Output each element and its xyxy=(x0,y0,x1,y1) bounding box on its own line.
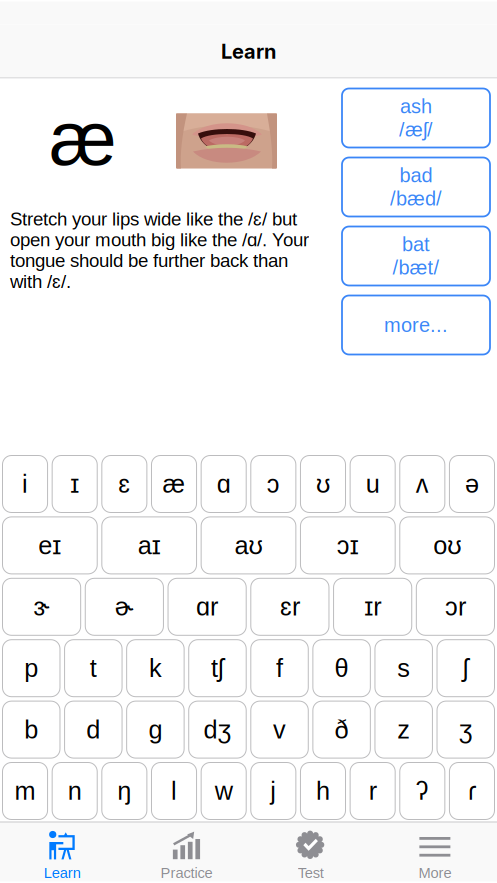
button[interactable]: ɑ xyxy=(201,455,246,512)
button[interactable]: Learn xyxy=(0,820,124,882)
staticText: z xyxy=(397,715,410,744)
button[interactable]: ŋ xyxy=(102,762,147,819)
staticText: ʊ xyxy=(316,470,330,498)
staticText: /æʃ/ xyxy=(399,118,433,141)
staticText: r xyxy=(369,777,377,805)
button[interactable]: ɛ xyxy=(102,455,147,512)
staticText: æ xyxy=(162,470,185,498)
staticText: ŋ xyxy=(117,777,131,805)
button[interactable]: tʃ xyxy=(189,640,246,697)
button[interactable]: ɔ xyxy=(251,455,296,512)
button[interactable]: ɾ xyxy=(449,762,494,819)
staticText: ɑr xyxy=(196,593,218,621)
staticText: l xyxy=(171,777,177,805)
staticText: j xyxy=(270,777,276,805)
button[interactable]: ɔɪ xyxy=(300,517,395,574)
staticText: bat xyxy=(402,233,430,255)
button[interactable]: v xyxy=(251,701,308,758)
button[interactable]: aɪ xyxy=(102,517,196,574)
staticText: dʒ xyxy=(203,715,231,744)
staticText: ʔ xyxy=(416,777,429,805)
button[interactable]: n xyxy=(52,762,97,819)
button[interactable]: ʊ xyxy=(300,455,346,512)
button[interactable]: ɪ xyxy=(52,455,97,512)
staticText: θ xyxy=(335,654,349,682)
staticText: aʊ xyxy=(234,531,262,559)
staticText: more... xyxy=(384,314,448,336)
button[interactable]: θ xyxy=(313,640,370,697)
button[interactable]: s xyxy=(375,640,432,697)
button[interactable]: Practice xyxy=(124,820,248,882)
button[interactable]: more... xyxy=(342,295,490,354)
button[interactable]: æ xyxy=(151,455,197,512)
button[interactable]: ɔr xyxy=(416,578,494,635)
button[interactable]: u xyxy=(350,455,395,512)
button[interactable]: ɝ xyxy=(2,578,81,635)
staticText: s xyxy=(397,654,410,682)
staticText: ɔr xyxy=(445,593,466,621)
button[interactable]: ʃ xyxy=(437,640,494,697)
button[interactable]: ɑr xyxy=(168,578,246,635)
staticText: /bæt/ xyxy=(392,256,439,279)
button[interactable]: Test xyxy=(248,820,373,882)
button[interactable]: g xyxy=(127,701,184,758)
staticText: k xyxy=(149,654,162,682)
staticText: ash xyxy=(400,95,432,117)
staticText: bad xyxy=(399,164,432,186)
button[interactable]: l xyxy=(151,762,197,819)
staticText: f xyxy=(276,654,283,682)
button[interactable]: eɪ xyxy=(2,517,97,574)
button[interactable]: r xyxy=(350,762,395,819)
button[interactable]: p xyxy=(2,640,60,697)
button[interactable]: k xyxy=(127,640,184,697)
staticText: n xyxy=(68,777,82,805)
button[interactable]: ə xyxy=(449,455,494,512)
staticText: p xyxy=(24,654,38,682)
staticText: ʃ xyxy=(463,654,469,682)
staticText: More xyxy=(418,865,451,881)
button[interactable]: d xyxy=(65,701,122,758)
staticText: eɪ xyxy=(38,531,61,559)
staticText: ɑ xyxy=(217,470,231,498)
staticText: oʊ xyxy=(433,531,461,559)
button[interactable]: dʒ xyxy=(189,701,246,758)
button[interactable]: More xyxy=(373,820,497,882)
button[interactable]: oʊ xyxy=(400,517,494,574)
staticText: w xyxy=(215,777,233,805)
button[interactable]: m xyxy=(2,762,48,819)
button[interactable]: f xyxy=(251,640,308,697)
staticText: m xyxy=(14,777,35,805)
staticText: tʃ xyxy=(211,654,224,682)
button[interactable]: ɪr xyxy=(334,578,412,635)
staticText: ɔɪ xyxy=(337,531,359,559)
button[interactable]: ʒ xyxy=(437,701,494,758)
button[interactable]: t xyxy=(65,640,122,697)
staticText: Learn xyxy=(44,865,81,881)
button[interactable]: ʌ xyxy=(400,455,445,512)
button[interactable]: bad xyxy=(342,157,490,216)
staticText: ɪr xyxy=(364,593,381,621)
staticText: ð xyxy=(335,715,349,744)
staticText: Stretch your lips wide like the /ɛ/ but … xyxy=(10,208,309,292)
button[interactable]: aʊ xyxy=(201,517,296,574)
button[interactable]: b xyxy=(2,701,60,758)
staticText: g xyxy=(148,715,162,744)
button[interactable]: bat xyxy=(342,226,490,285)
button[interactable]: ɛr xyxy=(251,578,329,635)
staticText: t xyxy=(90,654,97,682)
staticText: ɾ xyxy=(468,777,476,805)
button[interactable]: h xyxy=(300,762,346,819)
button[interactable]: j xyxy=(251,762,296,819)
button[interactable]: ɚ xyxy=(85,578,163,635)
button[interactable]: ʔ xyxy=(400,762,445,819)
staticText: Test xyxy=(298,865,324,881)
button[interactable]: i xyxy=(2,455,48,512)
button[interactable]: ash xyxy=(342,88,490,147)
staticText: ɚ xyxy=(115,593,134,621)
button[interactable]: ð xyxy=(313,701,370,758)
staticText: Learn xyxy=(221,39,276,64)
button[interactable]: w xyxy=(201,762,246,819)
staticText: /bæd/ xyxy=(390,187,442,210)
staticText: h xyxy=(316,777,330,805)
button[interactable]: z xyxy=(375,701,432,758)
